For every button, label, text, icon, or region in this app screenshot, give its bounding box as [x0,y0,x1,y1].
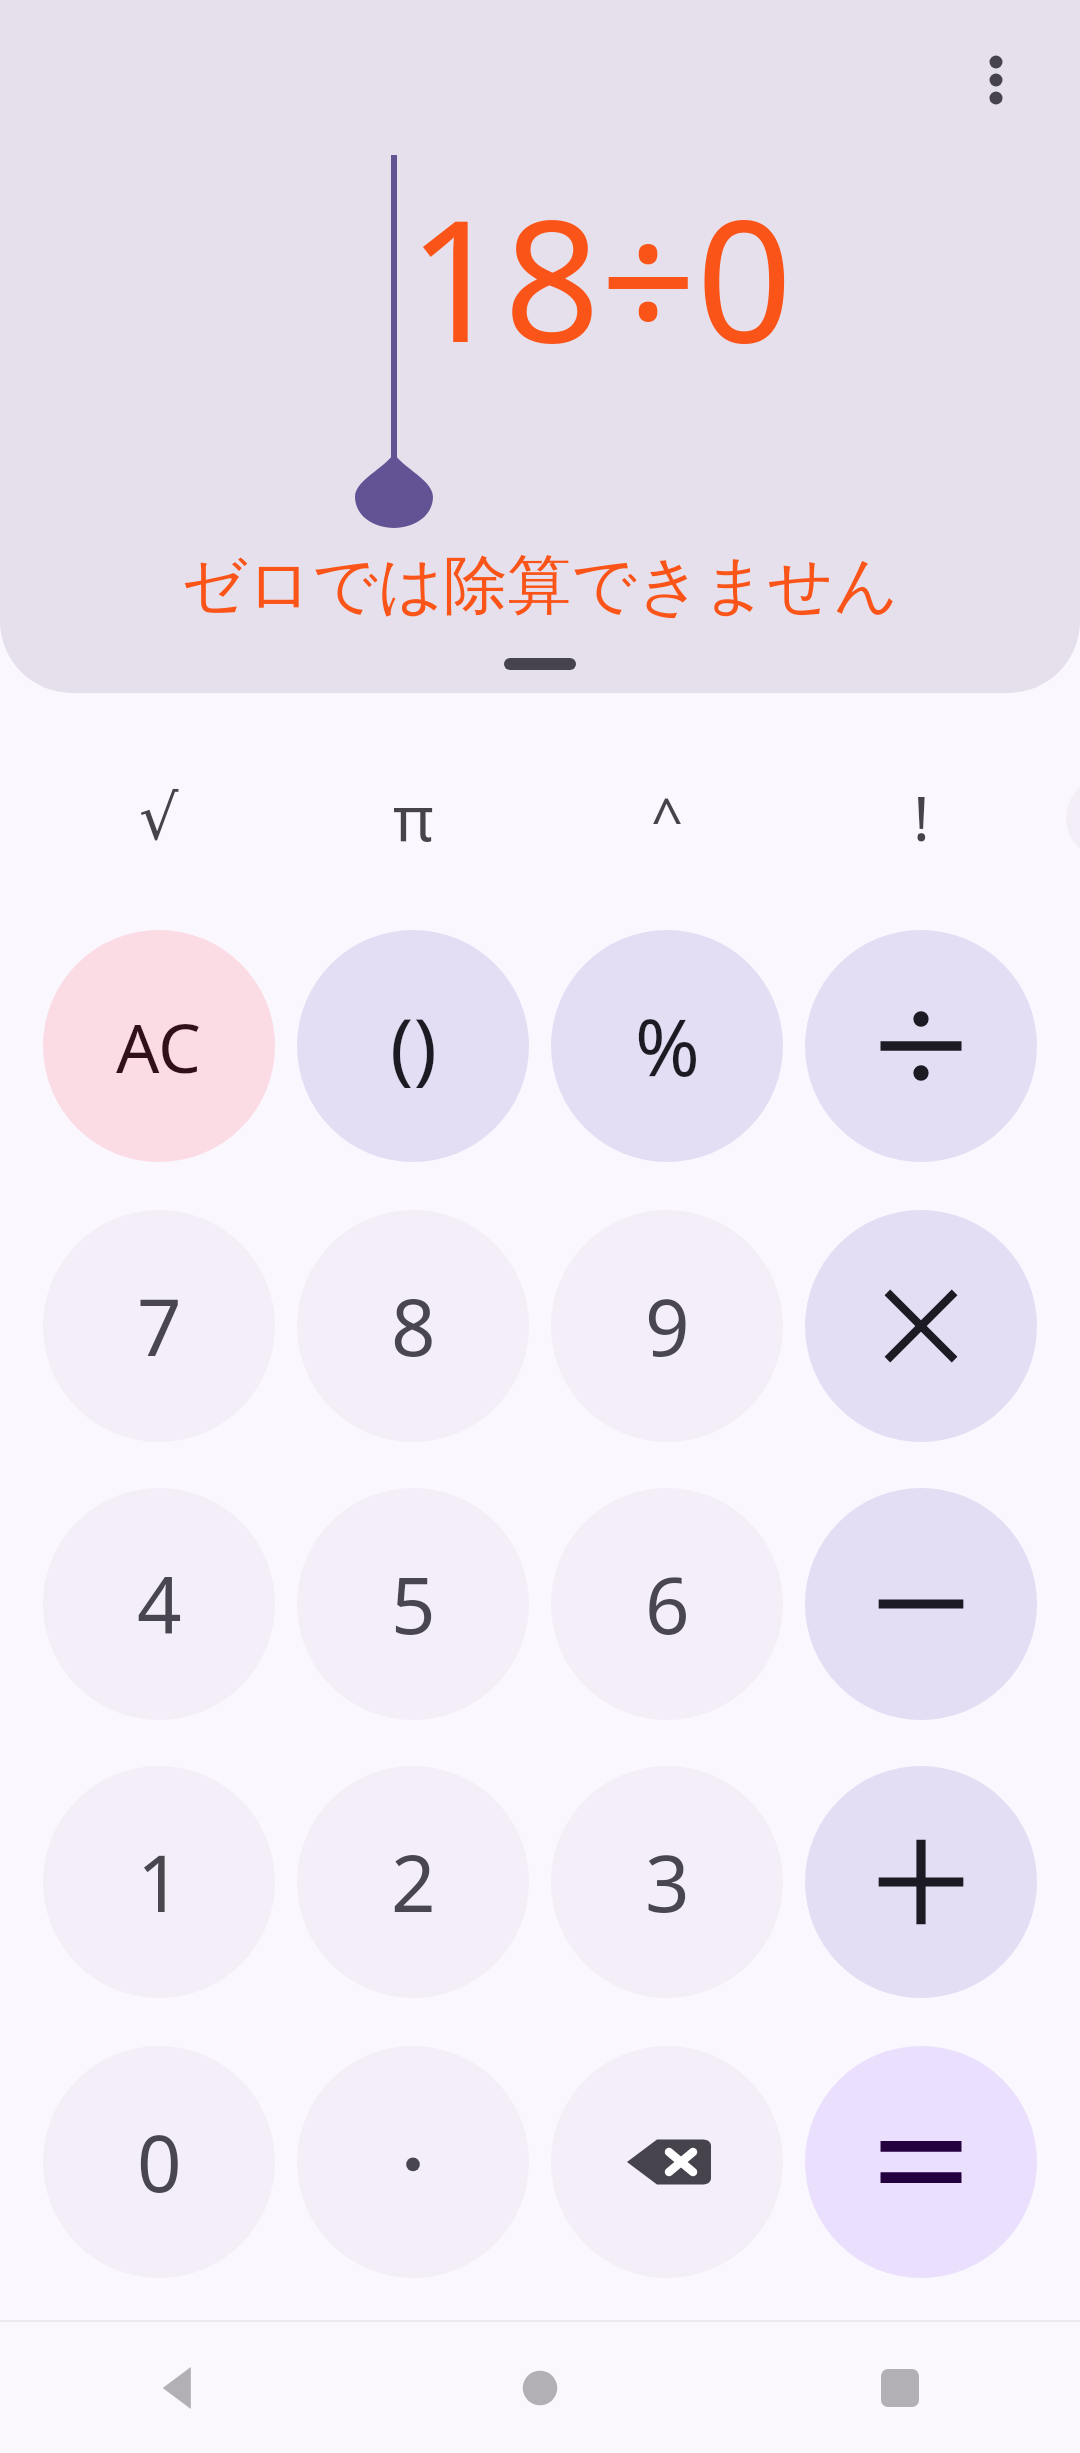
staticText: π [393,775,434,859]
button[interactable]: Divide [805,930,1037,1162]
button[interactable]: Decimal point [297,2046,529,2278]
button[interactable]: 4 [43,1488,275,1720]
button[interactable]: 6 [551,1488,783,1720]
staticText: AC [116,1000,202,1093]
button[interactable]: Resize display [504,658,576,670]
staticText: 8 [391,1273,436,1379]
staticText: ^ [651,779,684,855]
button[interactable]: Delete [551,2046,783,2278]
staticText: 9 [645,1273,690,1379]
staticText: 6 [645,1551,690,1657]
button[interactable]: 3 [551,1766,783,1998]
staticText: 18÷0 [408,162,793,391]
button[interactable]: More options [932,16,1060,144]
button[interactable]: More functions [1066,777,1080,859]
button[interactable]: 9 [551,1210,783,1442]
button[interactable]: 5 [297,1488,529,1720]
button[interactable]: 0 [43,2046,275,2278]
button[interactable]: ^ [587,752,747,882]
staticText: 0 [137,2109,182,2215]
button[interactable]: Home [485,2333,595,2443]
button[interactable]: Recent apps [845,2333,955,2443]
button[interactable]: AC [43,930,275,1162]
button[interactable]: π [333,752,493,882]
button[interactable]: 7 [43,1210,275,1442]
button[interactable]: Multiply [805,1210,1037,1442]
staticText: ! [913,775,930,859]
button[interactable]: 8 [297,1210,529,1442]
button[interactable]: ! [841,752,1001,882]
other: Selection handle [355,450,433,528]
button[interactable]: % [551,930,783,1162]
staticText: √ [139,781,179,853]
button[interactable]: Minus [805,1488,1037,1720]
staticText: 2 [391,1829,436,1935]
staticText: ゼロでは除算できません [0,545,1080,626]
button[interactable]: Plus [805,1766,1037,1998]
staticText: 7 [137,1273,182,1379]
button[interactable]: Back [125,2333,235,2443]
button[interactable]: √ [79,752,239,882]
staticText: 1 [137,1829,182,1935]
button[interactable]: 1 [43,1766,275,1998]
staticText: () [390,993,437,1099]
button[interactable]: 2 [297,1766,529,1998]
staticText: 3 [645,1829,690,1935]
button[interactable]: () [297,930,529,1162]
button[interactable]: Equals [805,2046,1037,2278]
staticText: 4 [137,1551,182,1657]
staticText: 5 [391,1551,436,1657]
staticText: % [635,993,700,1099]
